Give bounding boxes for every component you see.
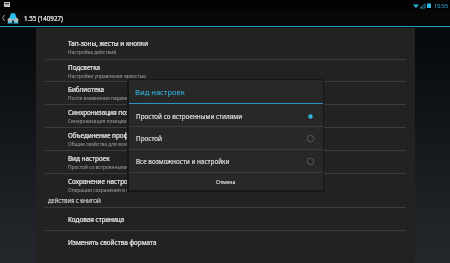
staticText: После изменения параметров требуется xyxy=(68,95,164,102)
button[interactable]: Отмена xyxy=(129,173,323,189)
button[interactable]: Кодовая страница xyxy=(36,208,415,230)
staticText: Общие свойства для всех профилей xyxy=(68,141,154,148)
button[interactable]: Простой xyxy=(129,127,323,149)
staticText: Синхронизация позиции xyxy=(68,108,145,117)
staticText: Библиотека xyxy=(68,85,105,94)
staticText: Операции сохранения и восстановления xyxy=(68,187,165,194)
button[interactable]: Back xyxy=(0,10,22,26)
button[interactable]: Синхронизация позиции xyxy=(36,105,415,127)
button[interactable]: Вид настроек xyxy=(36,151,415,173)
staticText: Вид настроек xyxy=(135,87,185,97)
button[interactable]: Сохранение настроек xyxy=(36,174,415,196)
staticText: Простой со встроенными стилями xyxy=(136,112,243,121)
staticText: Настройки управления яркостью xyxy=(68,73,147,80)
staticText: Отмена xyxy=(216,178,236,185)
staticText: Сохранение настроек xyxy=(68,177,135,186)
button[interactable]: Тап-зоны, жесты и кнопки xyxy=(36,36,415,59)
staticText: ДЕЙСТВИЯ С КНИГОЙ xyxy=(48,198,101,205)
staticText: Вид настроек xyxy=(68,154,110,163)
button[interactable]: Все возможности и настройки xyxy=(129,150,323,172)
staticText: Все возможности и настройки xyxy=(136,157,230,166)
staticText: Настройка действий xyxy=(68,49,117,56)
button[interactable]: Библиотека xyxy=(36,82,415,104)
staticText: Изменить свойства формата xyxy=(68,238,157,247)
staticText: Простой xyxy=(136,134,162,143)
staticText: 1.55 (140927) xyxy=(24,14,63,22)
staticText: 10:55 xyxy=(434,2,449,9)
button[interactable]: Изменить свойства формата xyxy=(36,231,415,253)
button[interactable]: Объединение профилей xyxy=(36,128,415,150)
button[interactable]: Простой со встроенными стилями xyxy=(129,105,323,127)
staticText: Простой со встроенными стилями xyxy=(68,164,150,171)
staticText: Тап-зоны, жесты и кнопки xyxy=(68,39,149,48)
staticText: Синхронизация позиции с другими xyxy=(68,118,152,125)
staticText: Объединение профилей xyxy=(68,131,144,140)
staticText: Кодовая страница xyxy=(68,215,125,224)
button[interactable]: Подсветка xyxy=(36,60,415,82)
staticText: Подсветка xyxy=(68,63,101,72)
